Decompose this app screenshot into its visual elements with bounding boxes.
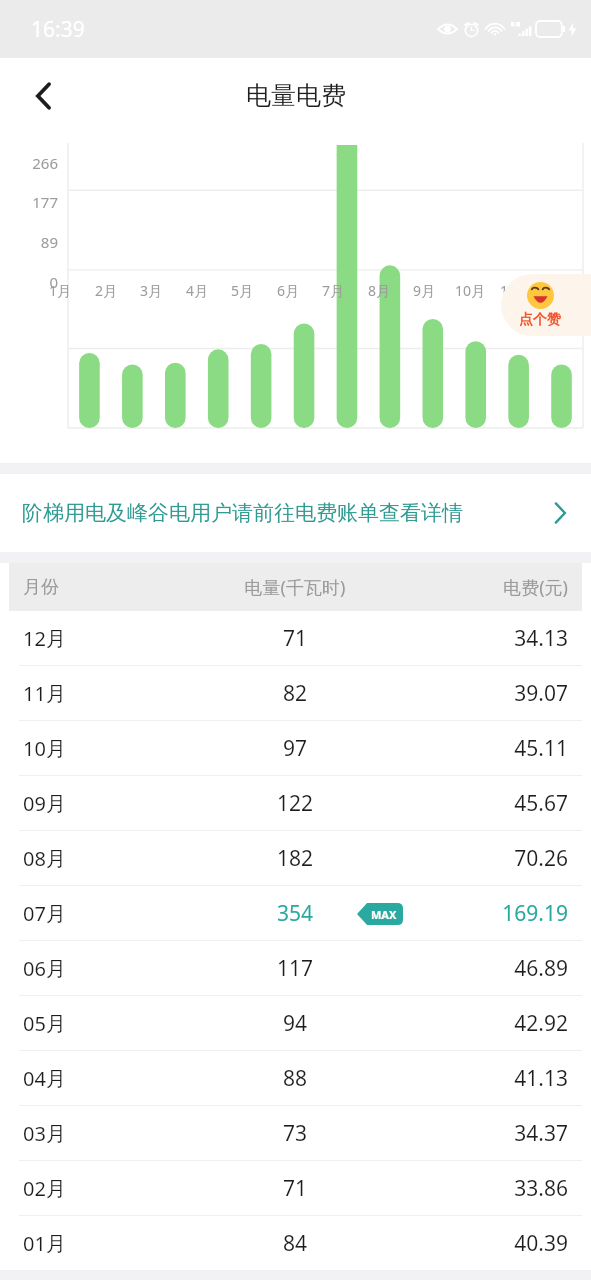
staticText: 39.07 <box>405 679 568 708</box>
staticText: 71 <box>283 624 308 653</box>
staticText: 0 <box>0 272 58 292</box>
button[interactable]: 05月 <box>9 996 582 1050</box>
staticText: 34.37 <box>405 1119 568 1148</box>
staticText: 03月 <box>23 1120 185 1147</box>
staticText: 9月 <box>405 281 443 300</box>
staticText: MAX <box>371 907 397 922</box>
staticText: 354 <box>277 899 314 928</box>
staticText: 8月 <box>360 281 398 300</box>
staticText: 84 <box>283 1229 308 1258</box>
staticText: 4月 <box>178 281 216 300</box>
staticText: 月份 <box>23 576 185 599</box>
staticText: 点个赞 <box>519 311 561 329</box>
staticText: 33.86 <box>405 1174 568 1203</box>
staticText: 89 <box>0 232 58 252</box>
staticText: 73 <box>283 1119 308 1148</box>
staticText: 7月 <box>314 281 352 300</box>
staticText: 12月 <box>542 281 580 300</box>
staticText: 177 <box>0 192 58 212</box>
staticText: 11月 <box>496 281 534 300</box>
staticText: 10月 <box>451 281 489 300</box>
staticText: 2月 <box>87 281 125 300</box>
staticText: 02月 <box>23 1175 185 1202</box>
staticText: 82 <box>283 679 308 708</box>
staticText: 09月 <box>23 790 185 817</box>
staticText: 169.19 <box>405 899 568 928</box>
staticText: 266 <box>0 153 58 173</box>
button[interactable]: 08月 <box>9 831 582 885</box>
staticText: 40.39 <box>405 1229 568 1258</box>
staticText: 45.67 <box>405 789 568 818</box>
button[interactable]: 09月 <box>9 776 582 830</box>
staticText: 182 <box>277 844 314 873</box>
button[interactable]: 10月 <box>9 721 582 775</box>
staticText: 88 <box>283 1064 308 1093</box>
staticText: 94 <box>283 1009 308 1038</box>
staticText: 97 <box>283 734 308 763</box>
staticText: 08月 <box>23 845 185 872</box>
staticText: 12月 <box>23 625 185 652</box>
button[interactable]: 04月 <box>9 1051 582 1105</box>
staticText: 70.26 <box>405 844 568 873</box>
button[interactable]: 01月 <box>9 1216 582 1270</box>
button[interactable]: 11月 <box>9 666 582 720</box>
staticText: 1月 <box>41 281 79 300</box>
staticText: 电费(元) <box>405 575 568 600</box>
staticText: 16:39 <box>31 15 85 44</box>
button[interactable]: 07月 <box>9 886 582 940</box>
staticText: 3月 <box>132 281 170 300</box>
button[interactable]: 12月 <box>9 611 582 665</box>
staticText: 117 <box>277 954 314 983</box>
button[interactable]: 06月 <box>9 941 582 995</box>
staticText: 45.11 <box>405 734 568 763</box>
staticText: 电量(千瓦时) <box>185 575 405 600</box>
staticText: 05月 <box>23 1010 185 1037</box>
staticText: 07月 <box>23 900 185 927</box>
staticText: 41.13 <box>405 1064 568 1093</box>
staticText: 06月 <box>23 955 185 982</box>
button[interactable]: 02月 <box>9 1161 582 1215</box>
staticText: 6月 <box>269 281 307 300</box>
staticText: 5月 <box>223 281 261 300</box>
button[interactable]: 阶梯用电及峰谷电用户请前往电费账单查看详情 <box>0 474 591 552</box>
staticText: 34.13 <box>405 624 568 653</box>
staticText: 10月 <box>23 735 185 762</box>
staticText: 电量电费 <box>246 80 346 111</box>
button[interactable]: 点个赞 <box>501 274 591 336</box>
button[interactable]: Back <box>22 74 66 118</box>
staticText: 阶梯用电及峰谷电用户请前往电费账单查看详情 <box>22 500 463 526</box>
staticText: 11月 <box>23 680 185 707</box>
button[interactable]: 03月 <box>9 1106 582 1160</box>
staticText: 04月 <box>23 1065 185 1092</box>
staticText: 01月 <box>23 1230 185 1257</box>
staticText: 46.89 <box>405 954 568 983</box>
staticText: 71 <box>283 1174 308 1203</box>
staticText: 122 <box>277 789 314 818</box>
staticText: 42.92 <box>405 1009 568 1038</box>
